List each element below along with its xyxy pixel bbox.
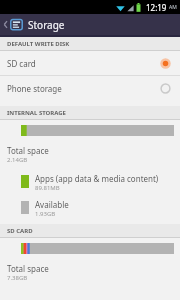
button[interactable]: Apps (app data & media content) — [0, 172, 180, 193]
staticText: 1.93GB — [35, 210, 56, 218]
staticText: SD card — [7, 58, 160, 69]
staticText: Storage — [28, 18, 65, 32]
staticText: Phone storage — [7, 83, 160, 94]
staticText: DEFAULT WRITE DISK — [7, 40, 70, 48]
button[interactable]: Phone storage — [0, 76, 180, 100]
staticText: 2.14GB — [7, 156, 28, 164]
staticText: AM — [169, 4, 177, 11]
staticText: Available — [35, 199, 69, 210]
staticText: Total space — [7, 145, 49, 156]
button[interactable]: Available — [0, 198, 180, 219]
button[interactable]: SD card — [0, 51, 180, 75]
staticText: INTERNAL STORAGE — [7, 109, 66, 117]
button[interactable]: Total space — [0, 144, 180, 165]
button[interactable]: Total space — [0, 262, 180, 283]
button[interactable]: Navigate up from Storage — [0, 14, 180, 35]
staticText: SD CARD — [7, 227, 33, 235]
staticText: 7.38GB — [7, 274, 28, 282]
staticText: Total space — [7, 263, 49, 274]
staticText: 12:19 — [146, 2, 167, 13]
staticText: 89.81MB — [35, 184, 60, 192]
staticText: Apps (app data & media content) — [35, 173, 159, 184]
